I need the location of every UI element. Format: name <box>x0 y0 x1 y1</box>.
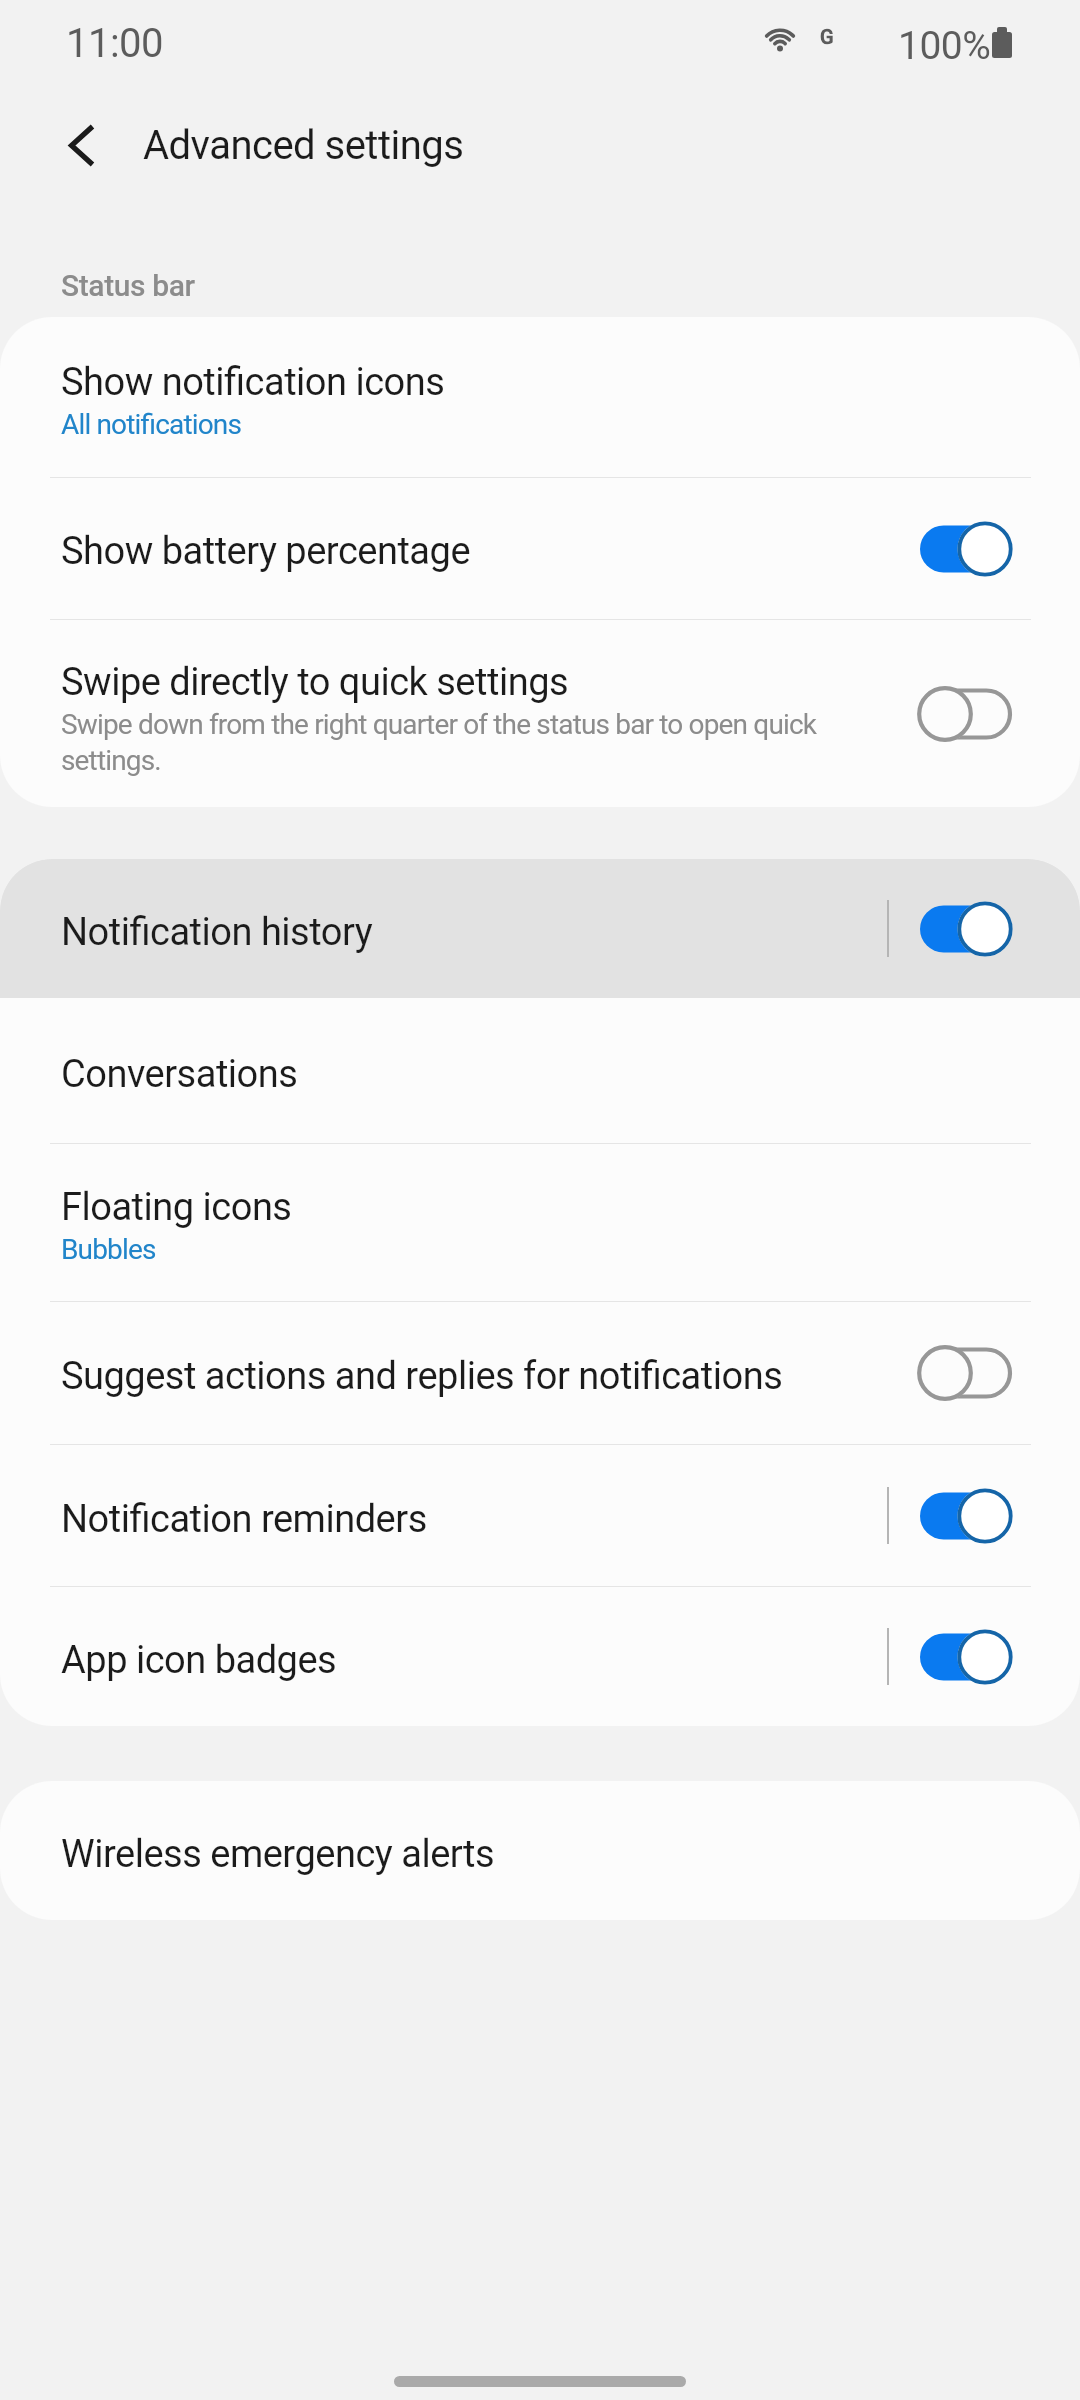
staticText: Show notification icons <box>61 359 445 405</box>
staticText: Advanced settings <box>143 122 464 169</box>
button[interactable]: Suggest actions and replies for notifica… <box>0 1302 1080 1444</box>
button[interactable]: Back <box>27 90 137 200</box>
button[interactable]: Swipe directly to quick settings <box>0 620 1080 807</box>
button[interactable]: Toggle off <box>917 683 1013 745</box>
button[interactable]: Show battery percentage <box>0 478 1080 619</box>
staticText: App icon badges <box>61 1637 337 1683</box>
button[interactable]: Toggle on <box>917 1485 1013 1547</box>
button[interactable]: Toggle on <box>917 518 1013 580</box>
staticText: 100% <box>898 23 991 69</box>
button[interactable]: Notification reminders <box>0 1445 1080 1586</box>
staticText: Wireless emergency alerts <box>61 1831 495 1877</box>
staticText: Suggest actions and replies for notifica… <box>61 1353 783 1399</box>
staticText: Show battery percentage <box>61 528 471 574</box>
button[interactable]: Toggle on <box>917 1626 1013 1688</box>
button[interactable]: Conversations <box>0 998 1080 1143</box>
staticText: Swipe down from the right quarter of the… <box>61 706 893 778</box>
staticText: Floating icons <box>61 1184 292 1230</box>
staticText: Notification reminders <box>61 1496 427 1542</box>
button[interactable]: Notification history <box>0 859 1080 998</box>
staticText: 11:00 <box>66 20 164 67</box>
button[interactable]: Floating icons <box>0 1144 1080 1301</box>
staticText: Swipe directly to quick settings <box>61 659 569 705</box>
staticText: Status bar <box>61 268 195 303</box>
button[interactable]: Toggle off <box>917 1342 1013 1404</box>
staticText: All notifications <box>61 406 242 442</box>
staticText: G <box>820 25 834 48</box>
staticText: Notification history <box>61 909 373 955</box>
staticText: Bubbles <box>61 1231 156 1267</box>
button[interactable]: App icon badges <box>0 1587 1080 1726</box>
button[interactable]: Wireless emergency alerts <box>0 1781 1080 1920</box>
staticText: Conversations <box>61 1051 298 1097</box>
button[interactable]: Toggle on <box>917 898 1013 960</box>
button[interactable]: Show notification icons <box>0 317 1080 477</box>
